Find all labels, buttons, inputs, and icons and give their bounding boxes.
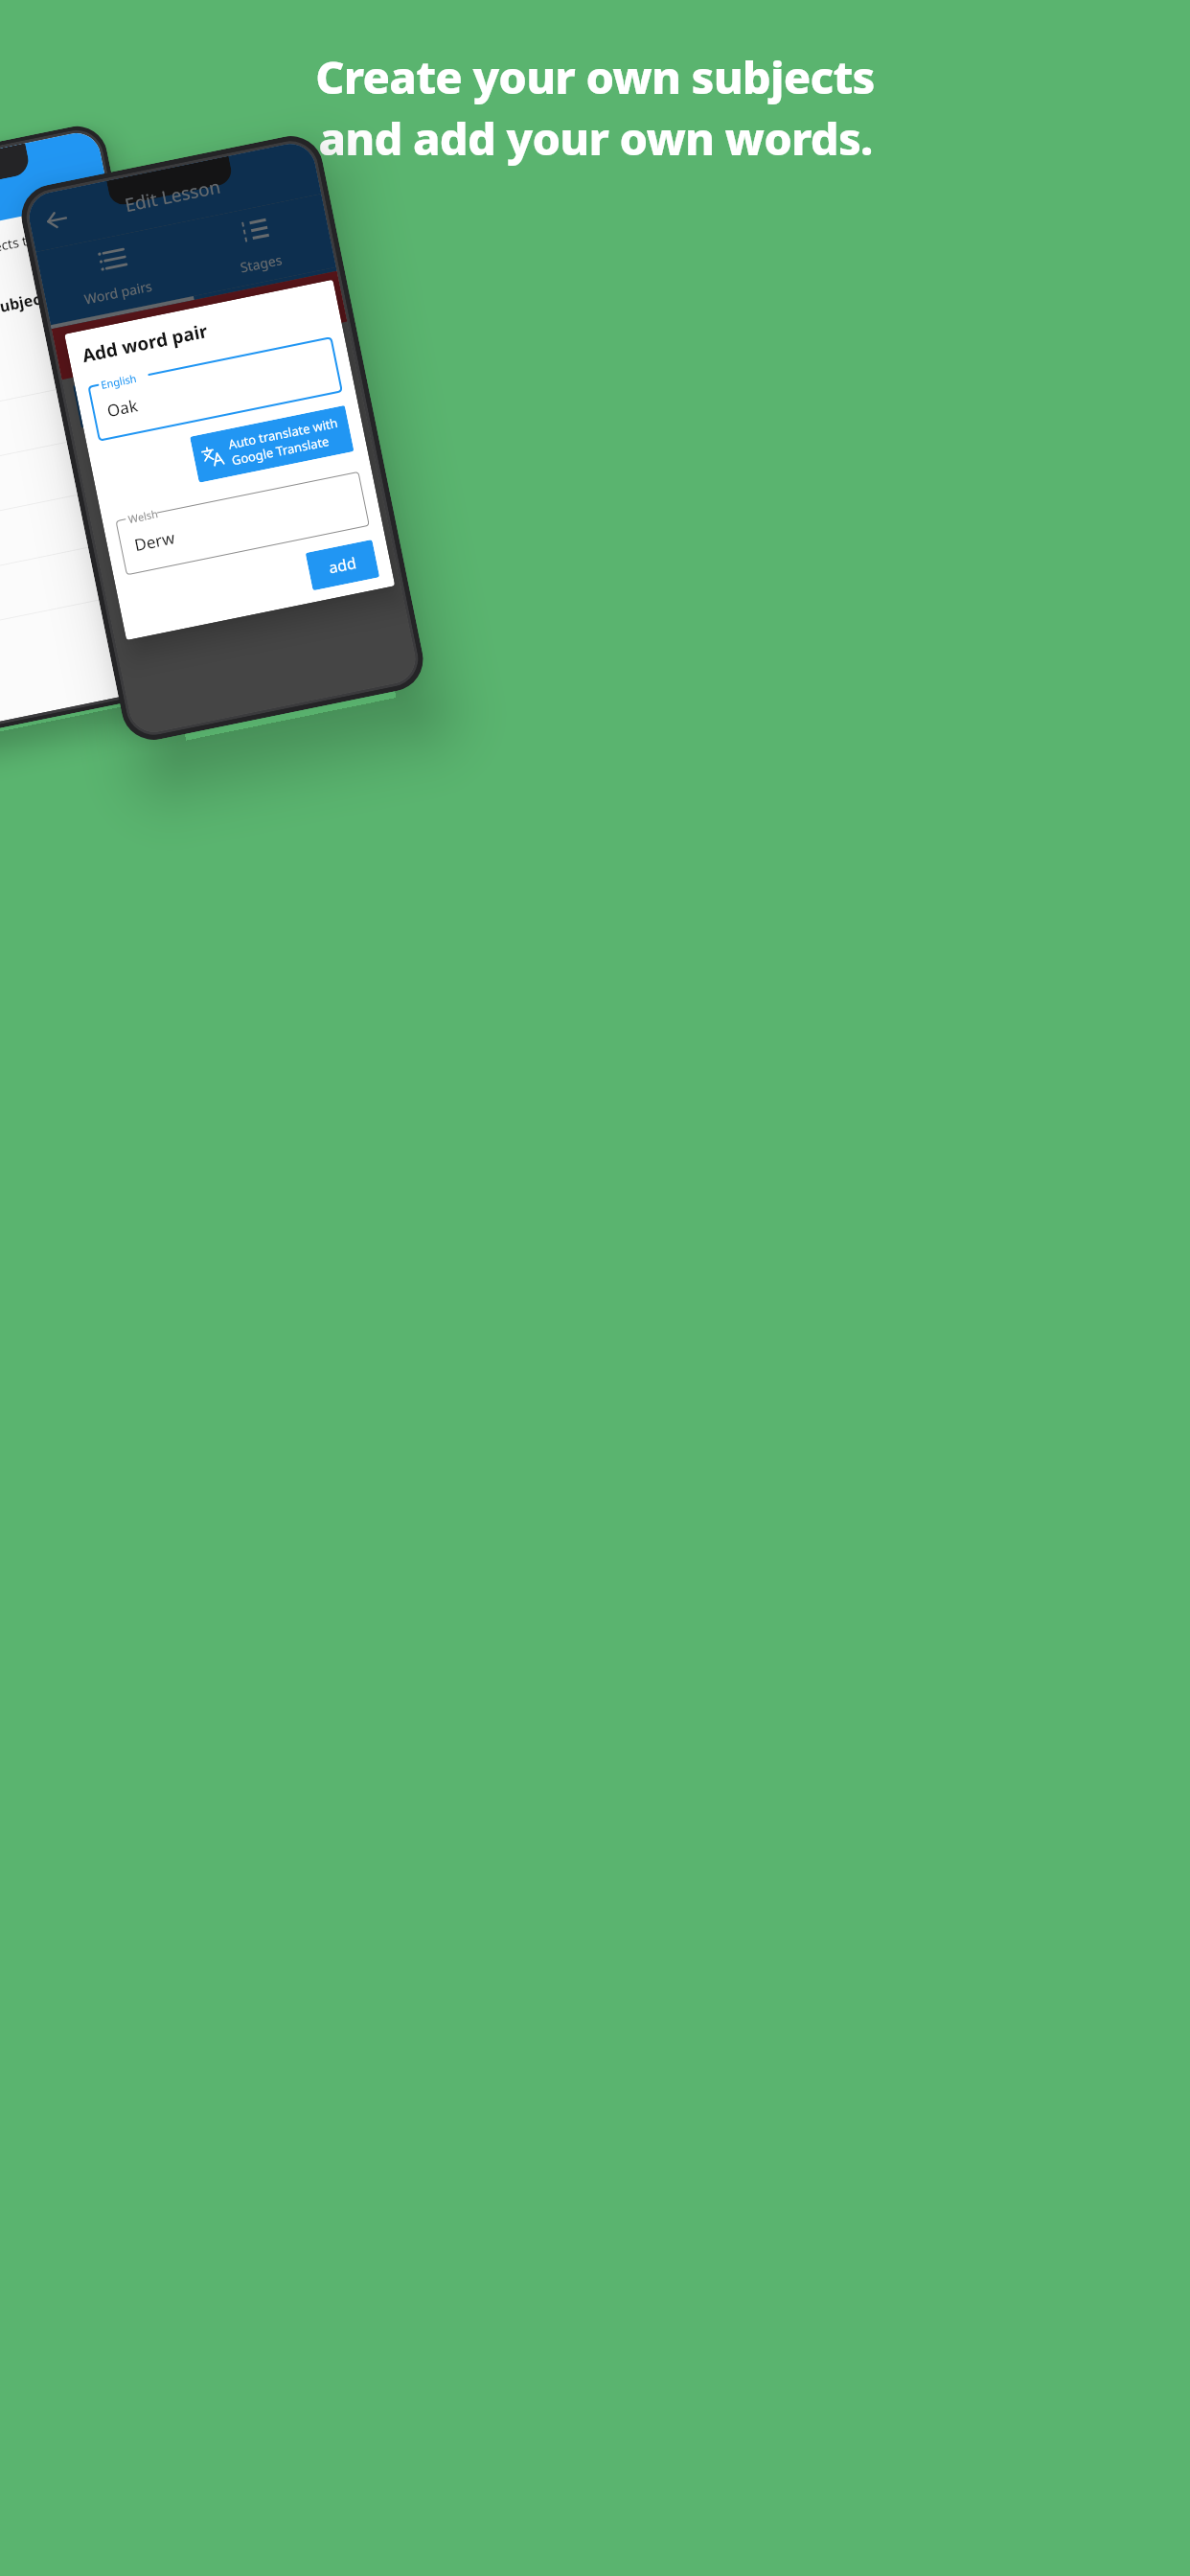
staticText: Welsh (127, 506, 160, 526)
button[interactable]: Words (0, 319, 145, 427)
button[interactable]: Games (0, 372, 156, 479)
staticText: Auto translate with Google Translate (227, 414, 342, 469)
button[interactable]: Word pairs (36, 223, 193, 325)
button[interactable]: add (305, 540, 380, 591)
staticText: Custom Subjects (0, 274, 112, 342)
staticText: Add at least 4 word pairs (68, 309, 236, 361)
staticText: Derw (132, 526, 177, 556)
staticText: add (327, 552, 358, 578)
button[interactable]: Auto translate with Google Translate (190, 405, 354, 483)
button[interactable]: Stages (179, 194, 336, 296)
staticText: Word pairs (83, 277, 154, 308)
staticText: Add word pair (80, 318, 210, 368)
button[interactable]: Back (34, 197, 79, 242)
staticText: Stages (239, 250, 284, 276)
button[interactable]: Phrases (0, 477, 177, 584)
staticText: Create your own subjects to practice the… (0, 217, 104, 303)
staticText: add word pair (162, 361, 259, 398)
button[interactable]: Sets (0, 425, 166, 532)
staticText: English (100, 371, 138, 392)
staticText: Oak (105, 394, 140, 422)
button[interactable]: add word pair (73, 331, 348, 428)
staticText: and add your own words. (318, 107, 873, 169)
button[interactable]: Verbs (0, 530, 188, 637)
staticText: Edit Lesson (123, 174, 223, 218)
staticText: Create your own subjects (315, 46, 875, 107)
